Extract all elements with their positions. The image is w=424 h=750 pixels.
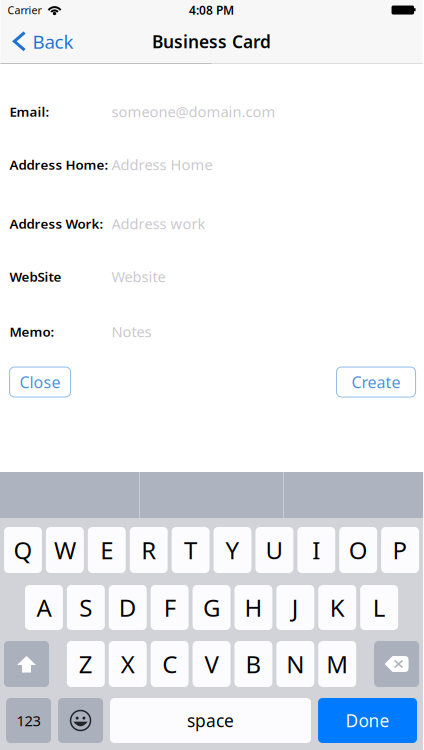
staticText: I (312, 534, 320, 566)
staticText: H (244, 592, 262, 623)
staticText: Done (345, 709, 389, 732)
staticText: Create (351, 371, 400, 393)
button[interactable]: T (172, 527, 210, 573)
staticText: Address Home (111, 155, 212, 174)
button[interactable]: L (360, 585, 398, 630)
staticText: Close (19, 371, 60, 393)
staticText: A (36, 592, 51, 623)
staticText: V (204, 648, 218, 680)
button[interactable]: space (110, 698, 311, 743)
button[interactable]: X (109, 641, 147, 687)
staticText: Website (111, 267, 165, 286)
staticText: X (121, 648, 135, 680)
button[interactable]: O (339, 527, 377, 573)
staticText: space (187, 709, 234, 732)
button[interactable]: Close (9, 367, 70, 397)
staticText: Q (13, 534, 32, 566)
staticText: someone@domain.com (111, 102, 275, 121)
button[interactable]: P (381, 527, 419, 573)
staticText: J (292, 592, 299, 623)
button[interactable]: V (193, 641, 230, 687)
button[interactable]: H (234, 585, 272, 630)
staticText: Address Work: (9, 215, 103, 232)
button[interactable]: N (276, 641, 314, 687)
button[interactable]: R (130, 527, 168, 573)
staticText: P (393, 534, 408, 566)
staticText: Carrier (7, 3, 41, 17)
button[interactable]: E (88, 527, 126, 573)
button[interactable]: 123 (6, 698, 51, 743)
staticText: 123 (16, 711, 40, 730)
staticText: Y (225, 534, 239, 566)
staticText: M (326, 648, 348, 680)
staticText: Back (32, 29, 73, 54)
button[interactable]: Z (67, 641, 105, 687)
staticText: S (79, 592, 92, 623)
staticText: Memo: (9, 323, 54, 340)
button[interactable]: W (46, 527, 84, 573)
button[interactable]: M (318, 641, 356, 687)
staticText: G (203, 592, 220, 623)
button[interactable]: G (193, 585, 230, 630)
button[interactable]: D (109, 585, 147, 630)
staticText: E (100, 534, 113, 566)
staticText: Address Home: (9, 156, 108, 173)
staticText: T (184, 534, 197, 566)
button[interactable]: Emoji (58, 698, 103, 743)
button[interactable]: F (151, 585, 189, 630)
staticText: C (162, 648, 177, 680)
staticText: D (119, 592, 137, 623)
button[interactable]: Create (336, 367, 415, 397)
button[interactable]: I (297, 527, 335, 573)
staticText: N (286, 648, 304, 680)
staticText: U (265, 534, 283, 566)
button[interactable]: K (318, 585, 356, 630)
staticText: Z (79, 648, 93, 680)
staticText: Business Card (152, 30, 271, 53)
staticText: L (373, 592, 386, 623)
button[interactable]: Y (214, 527, 251, 573)
staticText: W (54, 534, 76, 566)
button[interactable]: A (25, 585, 63, 630)
staticText: Email: (9, 103, 49, 120)
button[interactable]: J (276, 585, 314, 630)
staticText: 4:08 PM (189, 2, 234, 18)
button[interactable]: Shift (4, 641, 49, 687)
staticText: Address work (111, 214, 205, 233)
staticText: R (141, 534, 156, 566)
staticText: WebSite (9, 268, 61, 285)
button[interactable]: Back (0, 23, 73, 60)
staticText: K (330, 592, 345, 623)
button[interactable]: S (67, 585, 105, 630)
button[interactable]: B (234, 641, 272, 687)
staticText: B (245, 648, 261, 680)
button[interactable]: Done (318, 698, 417, 743)
staticText: O (349, 534, 368, 566)
button[interactable]: C (151, 641, 189, 687)
button[interactable]: Q (4, 527, 42, 573)
staticText: Notes (111, 322, 151, 341)
staticText: F (164, 592, 176, 623)
button[interactable]: U (255, 527, 293, 573)
button[interactable]: Delete (374, 641, 419, 687)
